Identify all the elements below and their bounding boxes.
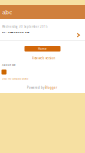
staticText: hi.. have a good day [2, 30, 29, 34]
staticText: Home [38, 47, 47, 51]
button[interactable]: abc [0, 5, 85, 19]
button[interactable]: View web version [31, 56, 55, 60]
button[interactable]: Home [24, 46, 60, 51]
button[interactable]: View my complete profile [2, 77, 28, 80]
staticText: Blogger [45, 86, 57, 90]
staticText: View web version [31, 56, 55, 60]
staticText: Powered by [27, 86, 44, 90]
button[interactable]: Next post [75, 31, 82, 39]
staticText: abc [2, 8, 12, 16]
staticText: About Me [2, 63, 15, 66]
button[interactable]: Blogger [45, 86, 57, 90]
staticText: View my complete profile [2, 77, 28, 80]
staticText: Wednesday, 30 September 2015 [2, 25, 48, 29]
